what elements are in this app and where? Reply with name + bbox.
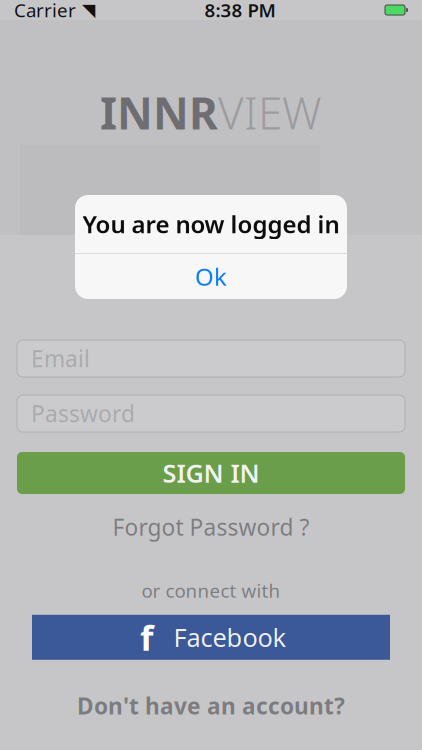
staticText: VIEW (218, 83, 322, 142)
staticText: Email (31, 343, 90, 373)
staticText: You are now logged in (82, 208, 339, 240)
staticText: ◥ (82, 0, 95, 20)
staticText: SIGN IN (162, 456, 259, 490)
staticText: f (140, 614, 153, 660)
staticText: Password (31, 398, 135, 428)
staticText: INNR (100, 83, 218, 142)
staticText: 8:38 PM (204, 0, 275, 22)
staticText: Facebook (173, 620, 286, 654)
staticText: or connect with (141, 578, 280, 603)
staticText: Forgot Password ? (112, 512, 309, 542)
button[interactable]: Forgot Password ? (0, 514, 422, 540)
button[interactable]: Don't have an account? (0, 692, 422, 720)
button[interactable]: f (32, 615, 390, 660)
button[interactable]: SIGN IN (17, 452, 405, 494)
button[interactable]: Ok (75, 254, 347, 299)
staticText: Carrier (14, 0, 76, 22)
staticText: Don't have an account? (77, 691, 345, 721)
staticText: Ok (195, 261, 227, 292)
